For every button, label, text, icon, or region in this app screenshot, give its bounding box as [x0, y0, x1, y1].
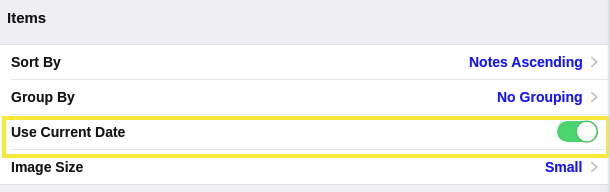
staticText: Group By [11, 89, 75, 105]
button[interactable]: Image Size [0, 149, 610, 184]
button[interactable]: Sort By [0, 44, 610, 79]
staticText: Image Size [11, 159, 84, 175]
staticText: Use Current Date [11, 124, 126, 140]
button[interactable]: Use Current Date, on [557, 121, 598, 142]
staticText: Items [7, 9, 47, 26]
staticText: No Grouping [497, 89, 583, 105]
staticText: Sort By [11, 54, 61, 70]
button[interactable]: Group By [0, 79, 610, 114]
staticText: Notes Ascending [469, 54, 583, 70]
staticText: Small [545, 159, 583, 175]
button[interactable]: Use Current Date [0, 114, 610, 149]
